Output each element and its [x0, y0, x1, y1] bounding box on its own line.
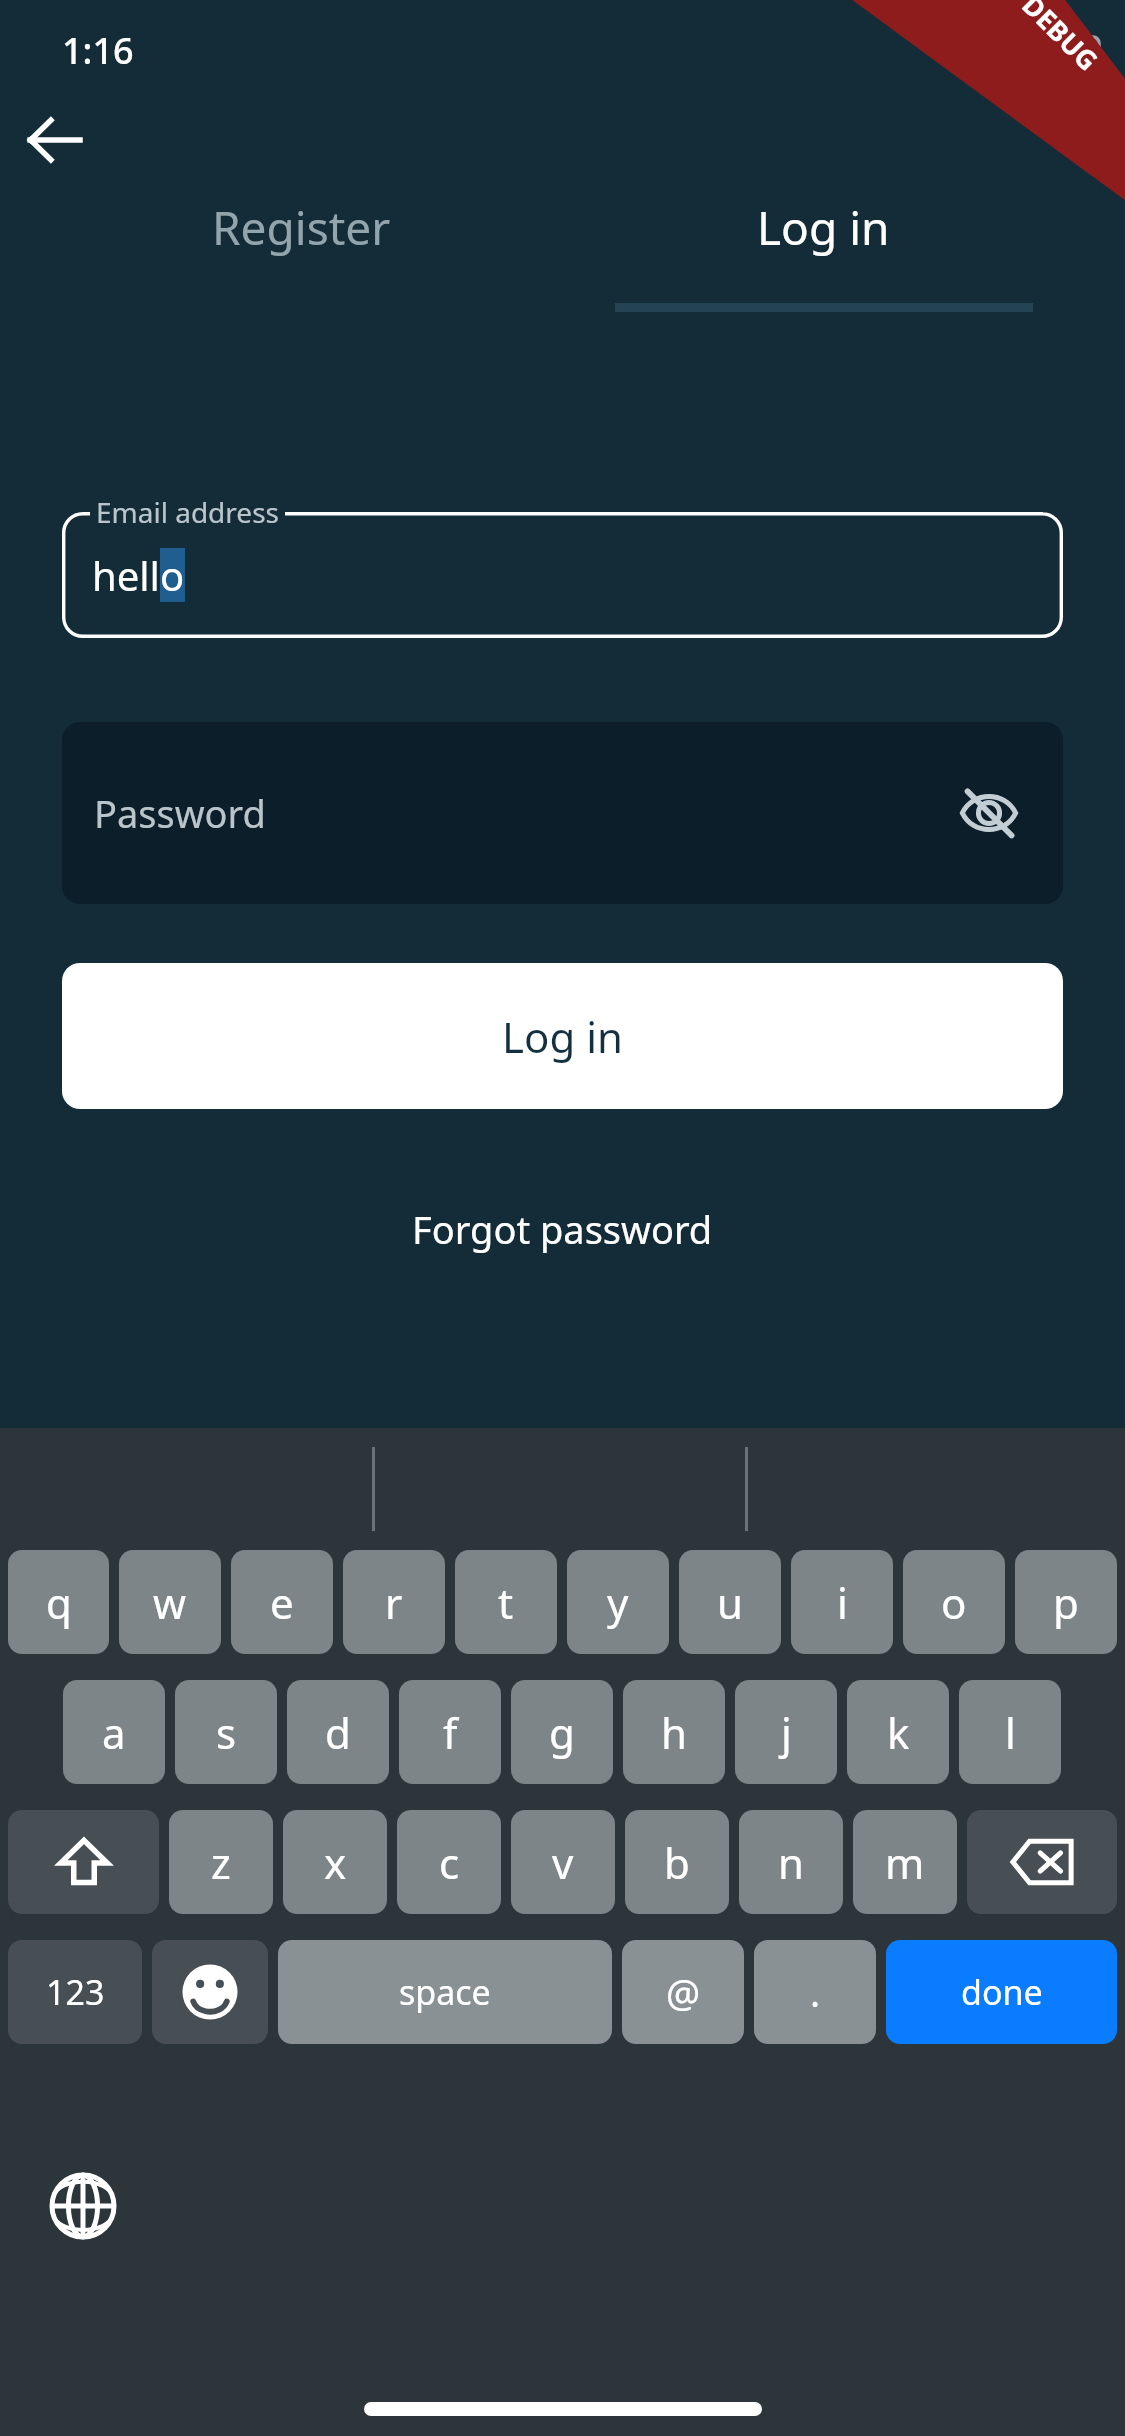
staticText: p — [1053, 1574, 1079, 1631]
button[interactable]: w — [119, 1550, 221, 1654]
staticText: 123 — [46, 1969, 105, 2015]
button[interactable]: p — [1015, 1550, 1117, 1654]
button[interactable]: 123 — [8, 1940, 142, 2044]
button[interactable]: x — [283, 1810, 387, 1914]
staticText: z — [211, 1834, 231, 1891]
staticText: g — [549, 1704, 575, 1761]
button[interactable]: Emoji — [152, 1940, 268, 2044]
button[interactable]: q — [8, 1550, 109, 1654]
staticText: Password — [94, 787, 266, 839]
staticText: t — [498, 1574, 514, 1631]
button[interactable]: t — [455, 1550, 557, 1654]
button[interactable]: Password — [62, 722, 1063, 904]
button[interactable]: o — [903, 1550, 1005, 1654]
button[interactable]: n — [739, 1810, 843, 1914]
staticText: v — [552, 1834, 574, 1891]
staticText: Register — [212, 196, 391, 259]
staticText: a — [102, 1704, 126, 1761]
staticText: u — [717, 1574, 743, 1631]
staticText: o — [941, 1574, 967, 1631]
staticText: o — [160, 548, 185, 602]
staticText: Log in — [757, 196, 890, 259]
staticText: r — [385, 1574, 403, 1631]
button[interactable]: m — [853, 1810, 957, 1914]
staticText: e — [270, 1574, 294, 1631]
staticText: w — [153, 1574, 187, 1631]
staticText: i — [837, 1574, 848, 1631]
button[interactable]: @ — [622, 1940, 744, 2044]
button[interactable]: hell — [62, 512, 1063, 638]
staticText: done — [961, 1969, 1043, 2015]
button[interactable]: b — [625, 1810, 729, 1914]
button[interactable]: Backspace — [967, 1810, 1117, 1914]
button[interactable]: Register — [40, 196, 562, 312]
staticText: d — [325, 1704, 351, 1761]
button[interactable]: . — [754, 1940, 876, 2044]
button[interactable]: Log in — [62, 963, 1063, 1109]
staticText: hell — [92, 548, 160, 602]
staticText: h — [661, 1704, 687, 1761]
button[interactable]: i — [791, 1550, 893, 1654]
button[interactable]: c — [397, 1810, 501, 1914]
staticText: Forgot password — [412, 1203, 713, 1255]
staticText: l — [1005, 1704, 1016, 1761]
button[interactable]: f — [399, 1680, 501, 1784]
staticText: y — [607, 1574, 629, 1631]
button[interactable]: r — [343, 1550, 445, 1654]
button[interactable]: k — [847, 1680, 949, 1784]
staticText: Email address — [96, 493, 279, 531]
staticText: m — [885, 1834, 925, 1891]
button[interactable]: z — [169, 1810, 273, 1914]
button[interactable]: Shift — [8, 1810, 159, 1914]
button[interactable]: g — [511, 1680, 613, 1784]
staticText: b — [664, 1834, 690, 1891]
button[interactable]: e — [231, 1550, 333, 1654]
staticText: DEBUG — [1014, 0, 1106, 78]
button[interactable]: a — [63, 1680, 165, 1784]
staticText: Log in — [502, 1008, 623, 1065]
staticText: q — [46, 1574, 72, 1631]
button[interactable]: Forgot password — [0, 1192, 1125, 1266]
staticText: c — [439, 1834, 460, 1891]
button[interactable]: y — [567, 1550, 669, 1654]
button[interactable]: j — [735, 1680, 837, 1784]
button[interactable]: v — [511, 1810, 615, 1914]
button[interactable]: space — [278, 1940, 612, 2044]
button[interactable]: s — [175, 1680, 277, 1784]
button[interactable]: done — [886, 1940, 1117, 2044]
button[interactable]: Back — [12, 98, 96, 182]
staticText: . — [810, 1966, 821, 2018]
staticText: k — [887, 1704, 910, 1761]
staticText: f — [443, 1704, 458, 1761]
staticText: space — [399, 1969, 491, 2015]
button[interactable]: Show password — [949, 773, 1029, 853]
button[interactable]: Log in — [562, 196, 1085, 312]
staticText: s — [216, 1704, 237, 1761]
staticText: 1:16 — [62, 26, 134, 75]
staticText: @ — [666, 1966, 701, 2018]
staticText: x — [324, 1834, 347, 1891]
button[interactable]: l — [959, 1680, 1061, 1784]
staticText: j — [781, 1704, 792, 1761]
staticText: n — [778, 1834, 804, 1891]
button[interactable]: Change language — [40, 2163, 126, 2249]
button[interactable]: h — [623, 1680, 725, 1784]
button[interactable]: d — [287, 1680, 389, 1784]
button[interactable]: u — [679, 1550, 781, 1654]
